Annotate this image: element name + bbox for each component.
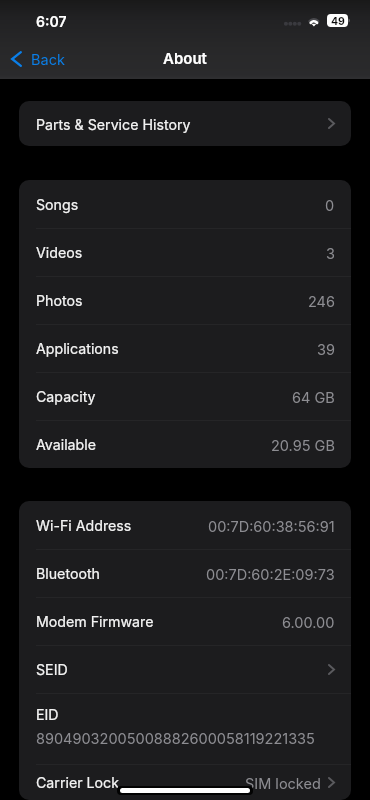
staticText: 89049032005008882600058119221335 — [36, 729, 315, 747]
staticText: Parts & Service History — [36, 116, 191, 134]
button[interactable]: Wi-Fi Address — [19, 501, 351, 549]
staticText: EID — [36, 706, 59, 724]
staticText: Wi-Fi Address — [36, 517, 132, 535]
staticText: 0 — [325, 196, 335, 214]
staticText: 246 — [308, 292, 335, 310]
staticText: Applications — [36, 340, 119, 358]
staticText: 6:07 — [36, 13, 67, 30]
button[interactable]: Modem Firmware — [19, 597, 351, 645]
button[interactable]: Carrier Lock — [19, 764, 351, 800]
button[interactable]: Parts & Service History — [19, 101, 351, 146]
button[interactable]: Applications — [19, 324, 351, 372]
staticText: 3 — [326, 244, 335, 262]
button[interactable]: Bluetooth — [19, 549, 351, 597]
button[interactable]: EID — [19, 693, 351, 764]
staticText: 00:7D:60:38:56:91 — [208, 517, 335, 535]
staticText: Videos — [36, 244, 83, 262]
button[interactable]: Photos — [19, 276, 351, 324]
staticText: 39 — [317, 340, 335, 358]
staticText: About — [163, 49, 207, 68]
staticText: Photos — [36, 292, 83, 310]
staticText: Modem Firmware — [36, 613, 154, 631]
button[interactable]: SEID — [19, 645, 351, 693]
staticText: 00:7D:60:2E:09:73 — [206, 565, 335, 583]
staticText: 49 — [331, 14, 345, 27]
button[interactable]: Videos — [19, 228, 351, 276]
staticText: Available — [36, 436, 96, 454]
button[interactable]: Capacity — [19, 372, 351, 420]
staticText: 64 GB — [292, 388, 335, 406]
staticText: SIM locked — [245, 774, 321, 792]
button[interactable]: Available — [19, 420, 351, 468]
staticText: SEID — [36, 661, 68, 679]
staticText: Carrier Lock — [36, 774, 119, 792]
button[interactable]: Songs — [19, 180, 351, 228]
staticText: 20.95 GB — [271, 436, 335, 454]
staticText: Bluetooth — [36, 565, 100, 583]
staticText: Back — [31, 50, 65, 68]
staticText: Capacity — [36, 388, 96, 406]
button[interactable]: Back — [0, 42, 75, 76]
staticText: 6.00.00 — [282, 613, 335, 631]
staticText: Songs — [36, 196, 79, 214]
